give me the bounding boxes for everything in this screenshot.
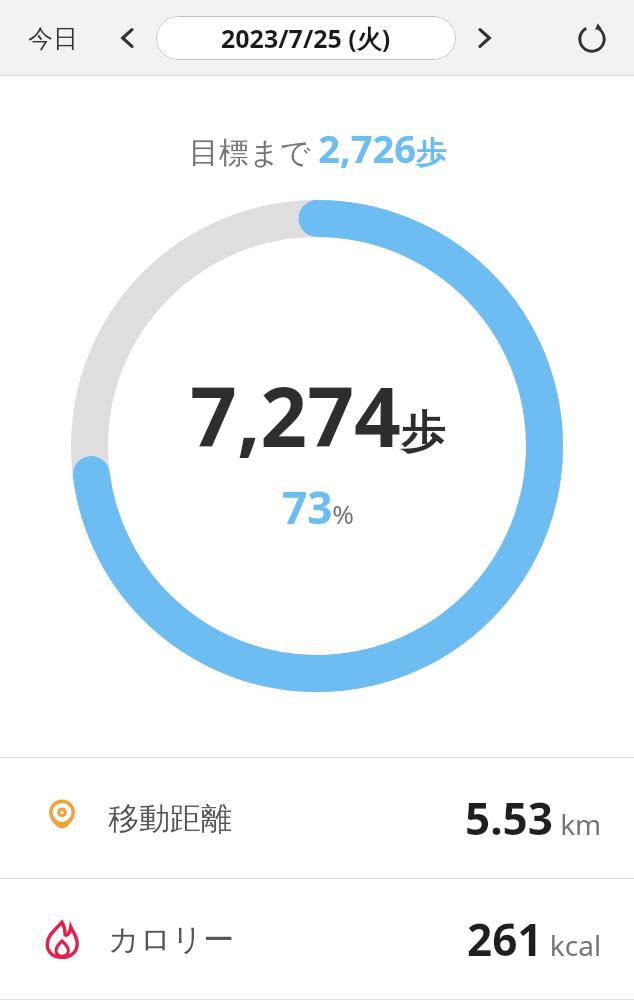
staticText: 5.53 km bbox=[465, 788, 602, 848]
staticText: 今日 bbox=[28, 23, 78, 54]
staticText: 7,274歩 bbox=[190, 359, 445, 471]
button[interactable]: 移動距離 bbox=[0, 758, 634, 878]
staticText: カロリー bbox=[108, 920, 235, 959]
button[interactable]: 次の日 bbox=[462, 16, 506, 60]
staticText: 73% bbox=[282, 477, 354, 537]
button[interactable]: 前の日 bbox=[106, 16, 150, 60]
other: 移動距離 bbox=[40, 796, 84, 840]
button[interactable]: 2023/7/25 (火) bbox=[156, 16, 456, 60]
button[interactable]: カロリー bbox=[0, 879, 634, 999]
staticText: 移動距離 bbox=[108, 799, 232, 838]
button[interactable]: 更新 bbox=[568, 14, 616, 62]
staticText: 2023/7/25 (火) bbox=[221, 21, 391, 55]
button[interactable]: 今日 bbox=[22, 17, 84, 60]
staticText: 目標まで 2,726歩 bbox=[189, 122, 446, 174]
other: カロリー bbox=[40, 917, 84, 961]
staticText: 261 kcal bbox=[467, 909, 602, 969]
